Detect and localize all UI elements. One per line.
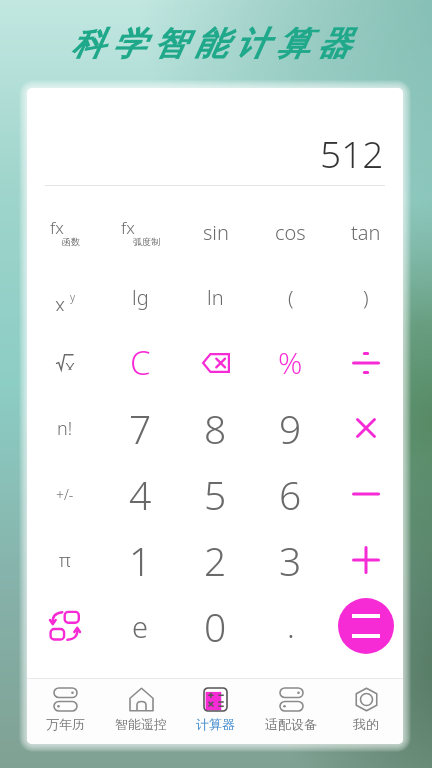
staticText: y (70, 289, 76, 304)
staticText: x (65, 353, 76, 370)
staticText: 2 (204, 534, 227, 587)
staticText: cos (275, 219, 306, 246)
button[interactable]: π (27, 527, 103, 593)
button[interactable]: 8 (178, 395, 253, 461)
staticText: fx (121, 216, 135, 239)
button[interactable]: 3 (253, 527, 328, 593)
staticText: 9 (279, 402, 302, 455)
staticText: 7 (129, 402, 152, 455)
button[interactable]: Equals (328, 593, 403, 659)
button[interactable]: x (27, 265, 103, 330)
button[interactable]: ) (328, 265, 403, 330)
staticText: lg (132, 284, 149, 311)
button[interactable]: Backspace (178, 330, 253, 395)
staticText: sin (203, 219, 229, 246)
staticText: fx (50, 216, 64, 239)
staticText: 适配设备 (265, 716, 317, 732)
button[interactable]: 6 (253, 461, 328, 527)
button[interactable]: 2 (178, 527, 253, 593)
button[interactable]: Divide (328, 330, 403, 395)
staticText: 智能遥控 (115, 716, 167, 732)
staticText: x (55, 291, 66, 311)
staticText: ) (363, 284, 369, 311)
staticText: 512 (320, 128, 384, 178)
staticText: 8 (204, 402, 227, 455)
staticText: 6 (279, 468, 302, 521)
staticText: 计算器 (196, 716, 235, 732)
button[interactable]: cos (253, 200, 328, 265)
staticText: 1 (129, 534, 152, 587)
staticText: % (278, 342, 303, 383)
button[interactable]: . (253, 593, 328, 659)
button[interactable]: Square root (27, 330, 103, 395)
button[interactable]: Plus (328, 527, 403, 593)
staticText: 0 (204, 600, 227, 653)
button[interactable]: ( (253, 265, 328, 330)
staticText: ( (288, 284, 294, 311)
button[interactable]: 计算器 (178, 679, 253, 744)
button[interactable]: 7 (103, 395, 178, 461)
staticText: . (287, 604, 295, 648)
button[interactable]: Minus (328, 461, 403, 527)
button[interactable]: 万年历 (27, 679, 103, 744)
button[interactable]: 智能遥控 (103, 679, 178, 744)
button[interactable]: sin (178, 200, 253, 265)
button[interactable]: 5 (178, 461, 253, 527)
staticText: C (130, 340, 151, 385)
button[interactable]: 我的 (328, 679, 403, 744)
staticText: n! (57, 416, 73, 441)
button[interactable]: 9 (253, 395, 328, 461)
button[interactable]: C (103, 330, 178, 395)
staticText: 函数 (62, 236, 80, 247)
staticText: 万年历 (46, 716, 85, 732)
button[interactable]: 0 (178, 593, 253, 659)
button[interactable]: 1 (103, 527, 178, 593)
staticText: tan (351, 219, 381, 246)
staticText: e (132, 607, 149, 646)
staticText: +/- (56, 485, 74, 504)
button[interactable]: Unit converter (27, 593, 103, 659)
staticText: 弧度制 (133, 236, 160, 247)
staticText: π (59, 547, 71, 573)
staticText: 5 (204, 468, 227, 521)
staticText: 科学智能计算器 (67, 23, 354, 65)
button[interactable]: ln (178, 265, 253, 330)
button[interactable]: tan (328, 200, 403, 265)
staticText: ln (207, 284, 224, 311)
button[interactable]: fx (27, 200, 103, 265)
button[interactable]: Plus minus (27, 461, 103, 527)
staticText: 3 (279, 534, 302, 587)
button[interactable]: % (253, 330, 328, 395)
staticText: 我的 (353, 716, 379, 732)
staticText: 4 (129, 468, 152, 521)
button[interactable]: Multiply (328, 395, 403, 461)
button[interactable]: 4 (103, 461, 178, 527)
button[interactable]: fx (103, 200, 178, 265)
button[interactable]: lg (103, 265, 178, 330)
button[interactable]: n! (27, 395, 103, 461)
button[interactable]: e (103, 593, 178, 659)
button[interactable]: 适配设备 (253, 679, 328, 744)
